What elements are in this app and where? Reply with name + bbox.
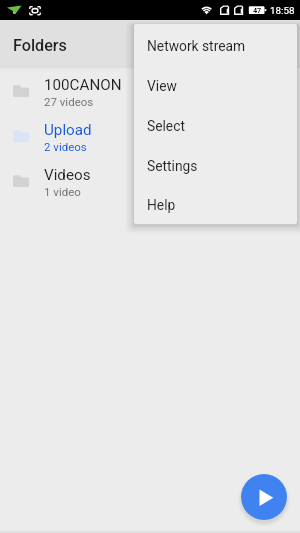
staticText: Help [147, 197, 176, 213]
button[interactable]: Play [241, 474, 287, 520]
button[interactable]: Settings [134, 146, 297, 186]
button[interactable]: Upload [0, 113, 300, 158]
staticText: Network stream [147, 38, 246, 54]
button[interactable]: Network stream [134, 26, 297, 66]
staticText: 1 video [44, 185, 81, 198]
staticText: Folders [13, 36, 67, 55]
staticText: Settings [147, 158, 198, 174]
button[interactable]: View [134, 66, 297, 106]
staticText: 47 [253, 6, 262, 14]
button[interactable]: 100CANON [0, 68, 300, 113]
staticText: 18:58 [270, 5, 295, 16]
button[interactable]: Help [134, 186, 297, 224]
staticText: 27 videos [44, 95, 94, 108]
staticText: Upload [44, 121, 92, 139]
button[interactable]: Videos [0, 158, 300, 203]
staticText: Select [147, 118, 185, 134]
staticText: Videos [44, 166, 91, 184]
staticText: 100CANON [44, 76, 122, 94]
button[interactable]: Select [134, 106, 297, 146]
staticText: View [147, 78, 177, 94]
staticText: 2 videos [44, 140, 87, 153]
